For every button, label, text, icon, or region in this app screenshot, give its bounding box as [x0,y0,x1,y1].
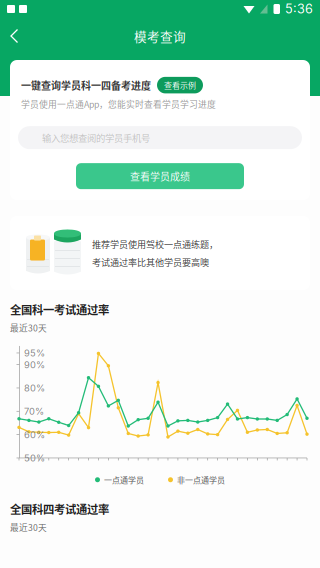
staticText: 80% [24,382,45,394]
button[interactable]: 查看示例 [157,77,203,93]
staticText: 一键查询学员科一四备考进度 [21,78,151,92]
staticText: 5:36 [285,1,313,17]
staticText: 50% [24,452,45,464]
staticText: 70% [24,406,44,417]
staticText: 输入您想查阅的学员手机号 [42,131,150,144]
button[interactable]: 查看学员成绩 [76,163,244,189]
staticText: 一点通学员 [104,474,144,486]
staticText: 最近30天 [10,521,47,533]
staticText: 学员使用一点通App，您能实时查看学员学习进度 [21,97,216,110]
staticText: 全国科一考试通过率 [10,301,109,317]
staticText: 非一点通学员 [177,474,225,486]
staticText: 考试通过率比其他学员要高噢 [92,255,209,269]
staticText: 60% [24,429,45,440]
staticText: 查看示例 [164,79,196,91]
staticText: 最近30天 [10,321,47,334]
staticText: 90% [24,359,45,370]
staticText: 查看学员成绩 [130,169,190,183]
button[interactable]: Back [0,18,29,53]
staticText: 推荐学员使用驾校一点通练题， [92,237,218,250]
staticText: 模考查询 [134,27,186,45]
staticText: 95% [24,347,45,359]
staticText: 全国科四考试通过率 [10,500,109,517]
